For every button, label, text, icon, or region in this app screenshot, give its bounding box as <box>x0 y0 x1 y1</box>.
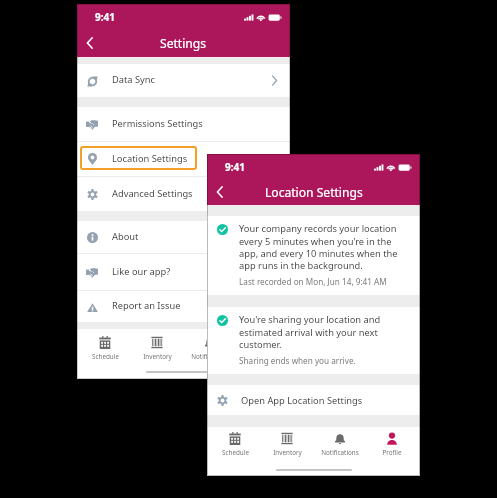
staticText: Advanced Settings <box>112 187 193 200</box>
staticText: Settings <box>160 35 207 51</box>
staticText: Inventory <box>143 352 172 361</box>
button[interactable]: Data Sync <box>77 64 290 97</box>
button[interactable]: Profile <box>237 336 287 361</box>
staticText: 9:41 <box>95 10 115 24</box>
button[interactable]: Like our app? <box>77 254 290 290</box>
staticText: You're sharing your location and estimat… <box>239 313 381 350</box>
button[interactable]: Schedule <box>210 432 260 457</box>
button[interactable]: Permissions Settings <box>77 107 290 141</box>
staticText: Your company records your location every… <box>239 222 398 271</box>
staticText: Report an Issue <box>112 299 181 312</box>
button[interactable]: Open App Location Settings <box>207 385 420 415</box>
staticText: Notifications <box>321 448 359 457</box>
staticText: Schedule <box>92 352 119 361</box>
button[interactable]: Profile <box>367 432 417 457</box>
staticText: Location Settings <box>265 184 363 200</box>
staticText: 9:41 <box>225 160 245 174</box>
button[interactable]: About <box>77 221 290 253</box>
button[interactable]: Notifications <box>315 432 365 457</box>
button[interactable]: Notifications <box>185 336 235 361</box>
button[interactable]: Report an Issue <box>77 291 290 322</box>
staticText: Profile <box>382 448 402 457</box>
button[interactable]: Back <box>77 29 105 57</box>
button[interactable]: Inventory <box>132 336 182 361</box>
staticText: Inventory <box>273 448 302 457</box>
staticText: Last recorded on Mon, Jun 14, 9:41 AM <box>239 276 387 287</box>
staticText: Sharing ends when you arrive. <box>239 355 356 366</box>
button[interactable]: Location Settings <box>77 142 290 176</box>
staticText: About <box>112 230 139 243</box>
staticText: Location Settings <box>112 152 188 165</box>
button[interactable]: Back <box>207 179 235 205</box>
button[interactable]: Advanced Settings <box>77 177 290 211</box>
staticText: Data Sync <box>112 73 156 86</box>
staticText: Notifications <box>191 352 229 361</box>
staticText: Permissions Settings <box>112 117 203 130</box>
staticText: Profile <box>252 352 272 361</box>
staticText: Like our app? <box>112 265 171 278</box>
staticText: Schedule <box>222 448 249 457</box>
button[interactable]: Inventory <box>262 432 312 457</box>
staticText: Open App Location Settings <box>241 394 363 407</box>
button[interactable]: Schedule <box>80 336 130 361</box>
